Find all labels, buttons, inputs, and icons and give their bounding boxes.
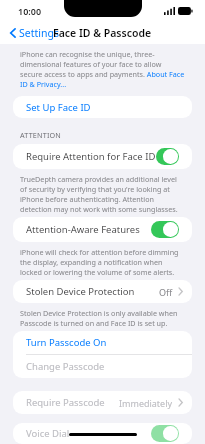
staticText: Attention-Aware Features	[26, 223, 140, 236]
button[interactable]: Require Passcode	[13, 391, 192, 414]
button[interactable]: Settings	[8, 23, 61, 43]
button[interactable]: Voice Dial	[13, 423, 192, 444]
button[interactable]: Toggle	[151, 221, 179, 238]
staticText: 10:00	[18, 5, 42, 17]
button[interactable]: Toggle	[156, 148, 179, 165]
staticText: Face ID & Passcode	[53, 26, 152, 40]
staticText: Require Attention for Face ID	[26, 150, 156, 163]
staticText: iPhone will check for attention before d…	[20, 247, 185, 277]
staticText: Off	[159, 286, 173, 298]
staticText: ATTENTION	[20, 130, 61, 140]
staticText: Stolen Device Protection is only availab…	[20, 308, 185, 328]
button[interactable]: Toggle	[151, 425, 179, 442]
staticText: Change Passcode	[26, 360, 105, 373]
button[interactable]: Stolen Device Protection	[13, 280, 192, 303]
staticText: TrueDepth camera provides an additional …	[20, 174, 185, 214]
staticText: iPhone can recognise the unique, three-d…	[20, 49, 185, 89]
staticText: Settings	[19, 26, 59, 40]
staticText: Set Up Face ID	[26, 101, 91, 114]
button[interactable]: Change Passcode	[13, 355, 192, 378]
button[interactable]: Set Up Face ID	[13, 96, 192, 118]
button[interactable]: Turn Passcode On	[13, 331, 192, 354]
staticText: Voice Dial	[26, 427, 70, 440]
button[interactable]: Require Attention for Face ID	[13, 144, 192, 169]
staticText: Stolen Device Protection	[26, 285, 135, 298]
staticText: Require Passcode	[26, 396, 105, 409]
staticText: Turn Passcode On	[26, 336, 107, 349]
staticText: Immediately	[119, 397, 173, 409]
button[interactable]: Attention-Aware Features	[13, 217, 192, 242]
